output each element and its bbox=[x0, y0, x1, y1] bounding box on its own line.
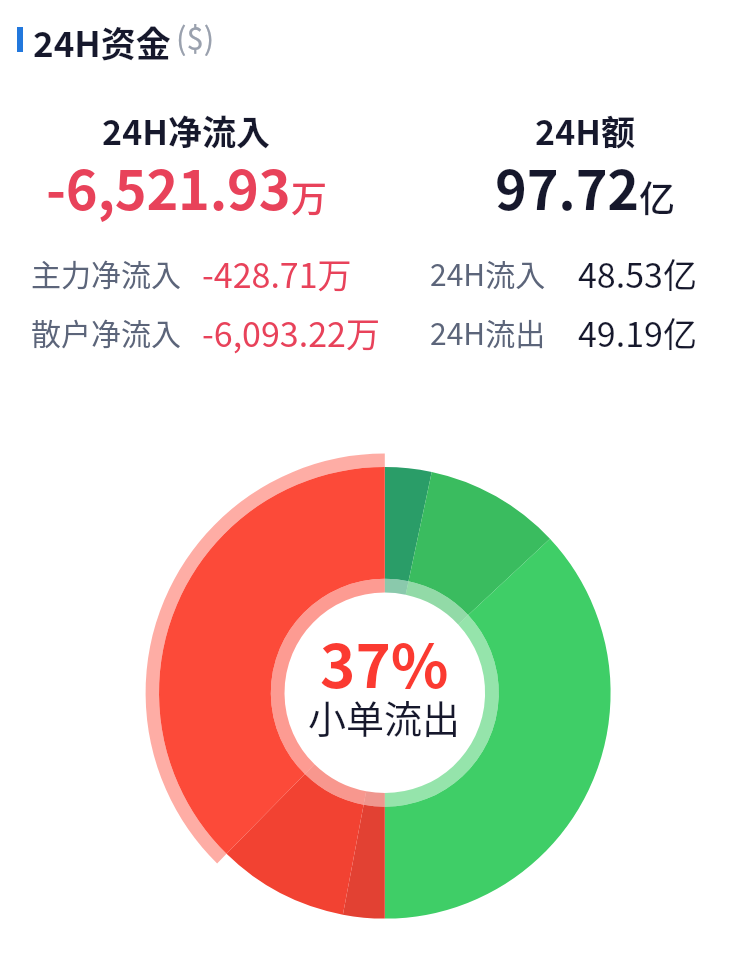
other: 24H 资金流向占比圆环图 bbox=[0, 0, 750, 972]
staticText: 亿 bbox=[639, 170, 676, 222]
staticText: 97.72 bbox=[495, 147, 639, 225]
staticText: 24H流出 bbox=[430, 310, 546, 353]
staticText: -6,093.22万 bbox=[202, 308, 380, 357]
staticText: -6,521.93 bbox=[46, 147, 291, 225]
staticText: 主力净流入 bbox=[31, 251, 181, 294]
staticText: 49.19亿 bbox=[578, 308, 697, 357]
staticText: 37% bbox=[320, 618, 449, 705]
staticText: 24H资金 bbox=[33, 16, 171, 67]
button[interactable]: 24H资金 bbox=[17, 23, 215, 74]
staticText: 24H净流入 bbox=[0, 106, 372, 155]
staticText: -428.71万 bbox=[202, 249, 352, 298]
staticText: 万 bbox=[291, 170, 328, 222]
staticText: 小单流出 bbox=[308, 689, 461, 744]
staticText: 48.53亿 bbox=[578, 249, 697, 298]
staticText: 散户净流入 bbox=[31, 310, 181, 353]
staticText: ($) bbox=[176, 14, 215, 59]
staticText: 24H额 bbox=[420, 106, 750, 155]
staticText: 24H流入 bbox=[430, 251, 546, 294]
